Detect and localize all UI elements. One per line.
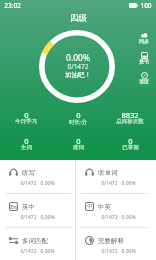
- button[interactable]: 听单词: [76, 160, 156, 194]
- button[interactable]: 完整解释: [76, 228, 156, 260]
- button[interactable]: En: [0, 194, 75, 228]
- staticText: 0/1472: [20, 248, 37, 255]
- staticText: 已掌握: [122, 144, 139, 151]
- staticText: 0/1472: [101, 248, 118, 255]
- button[interactable]: Speed: [137, 72, 151, 85]
- staticText: 四级: [70, 13, 87, 24]
- staticText: 0: [128, 136, 133, 146]
- button[interactable]: 听写: [0, 160, 75, 194]
- staticText: 今日学习: [15, 118, 37, 125]
- staticText: 0: [24, 136, 29, 146]
- staticText: 0.00%: [40, 248, 55, 255]
- staticText: 加油吧！: [65, 71, 91, 79]
- button[interactable]: 多词匹配: [0, 228, 75, 260]
- staticText: 多词匹配: [22, 237, 48, 245]
- staticText: 0: [76, 136, 81, 146]
- staticText: 0/1472: [20, 214, 37, 221]
- staticText: 速度: [139, 78, 149, 84]
- staticText: 0/1472: [20, 180, 37, 187]
- staticText: 完整解释: [98, 237, 124, 245]
- button[interactable]: Change book: [137, 52, 151, 65]
- staticText: 中: [87, 203, 93, 210]
- staticText: 听写: [22, 169, 35, 177]
- staticText: 0.00%: [121, 180, 136, 187]
- staticText: 0.00%: [40, 214, 55, 221]
- staticText: 0.00%: [121, 248, 136, 255]
- staticText: 8832: [121, 110, 139, 120]
- button[interactable]: 中: [76, 194, 156, 228]
- button[interactable]: 0: [104, 136, 156, 153]
- staticText: 同步: [139, 38, 149, 44]
- button[interactable]: 0: [52, 110, 104, 128]
- staticText: 总目标次数: [116, 118, 144, 125]
- staticText: 0.00%: [40, 180, 55, 187]
- staticText: 0.00%: [121, 214, 136, 221]
- button[interactable]: 0: [0, 136, 52, 153]
- staticText: 0: [76, 110, 81, 120]
- staticText: 23:02: [4, 1, 21, 10]
- staticText: En: [10, 203, 17, 210]
- staticText: 100: [140, 1, 152, 10]
- staticText: 0/1472: [67, 62, 89, 71]
- button[interactable]: 0: [52, 136, 104, 153]
- button[interactable]: Sync: [137, 32, 151, 45]
- staticText: 换书: [139, 58, 149, 64]
- staticText: 时长:分: [69, 118, 87, 126]
- button[interactable]: 8832: [104, 110, 156, 127]
- staticText: 0/1472: [101, 214, 118, 221]
- staticText: 英中: [22, 203, 35, 211]
- staticText: 0: [24, 110, 29, 120]
- staticText: 中英: [98, 203, 111, 211]
- staticText: 生词: [21, 144, 32, 151]
- button[interactable]: 0: [0, 110, 52, 127]
- staticText: 难词: [73, 144, 84, 151]
- staticText: 0.00%: [66, 52, 90, 64]
- staticText: 0/1472: [101, 180, 118, 187]
- staticText: 听单词: [98, 169, 118, 177]
